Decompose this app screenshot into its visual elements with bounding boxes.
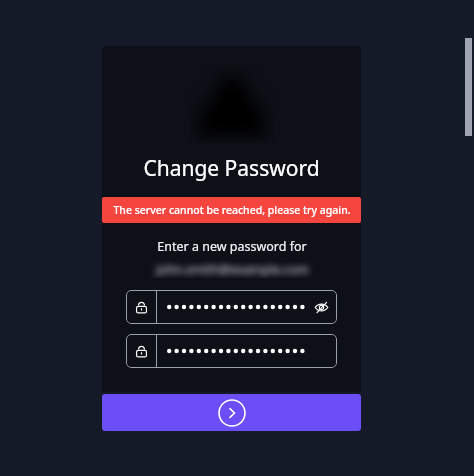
- button[interactable]: Show password: [305, 290, 337, 324]
- button[interactable]: Show password: [126, 290, 337, 324]
- staticText: Change Password: [143, 154, 320, 183]
- staticText: The server cannot be reached, please try…: [113, 203, 351, 217]
- button[interactable]: [126, 334, 337, 368]
- staticText: john.smith@example.com: [156, 261, 309, 278]
- button[interactable]: Submit: [102, 394, 361, 431]
- staticText: Enter a new password for: [157, 238, 307, 255]
